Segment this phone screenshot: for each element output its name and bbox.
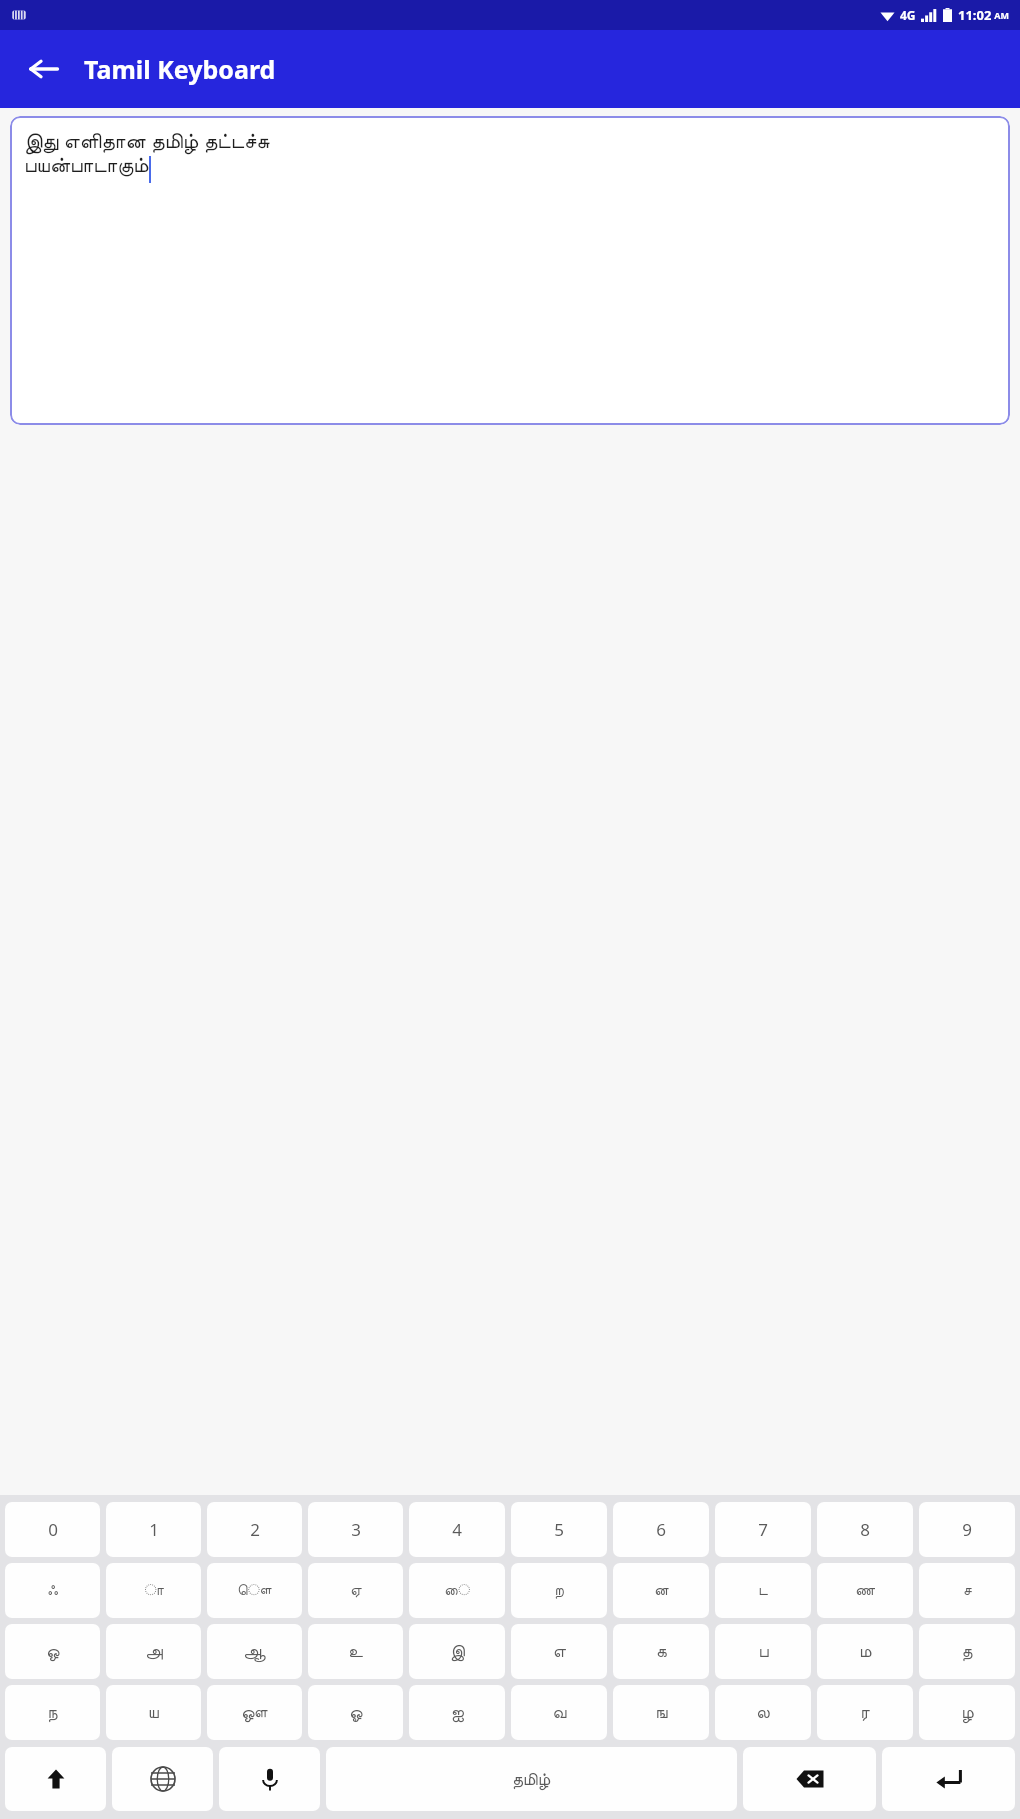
button[interactable]: ர [817,1685,913,1740]
button[interactable]: 2 [207,1502,302,1557]
button[interactable]: ஏ [308,1563,403,1618]
button[interactable]: தமிழ் [326,1747,737,1811]
staticText: 5 [554,1518,564,1541]
button[interactable]: எ [511,1624,607,1679]
button[interactable]: 0 [5,1502,100,1557]
staticText: 0 [48,1518,58,1541]
staticText: 6 [656,1518,666,1541]
staticText: AM [992,9,1010,21]
button[interactable]: இ [409,1624,505,1679]
button[interactable]: 8 [817,1502,913,1557]
button[interactable]: அ [106,1624,201,1679]
staticText: 1 [149,1518,159,1541]
button[interactable]: ற [511,1563,607,1618]
staticText: ல [756,1704,770,1721]
button[interactable]: Voice input [219,1747,320,1811]
staticText: ஔ [241,1704,268,1721]
staticText: Tamil Keyboard [84,52,276,86]
staticText: ன [654,1583,669,1598]
staticText: 7 [758,1518,768,1541]
staticText: ை [444,1583,470,1598]
staticText: இது எளிதான தமிழ் தட்டச்சு [24,126,270,155]
button[interactable]: 1 [106,1502,201,1557]
button[interactable]: ண [817,1563,913,1618]
staticText: அ [145,1643,163,1660]
button[interactable]: உ [308,1624,403,1679]
staticText: ப [758,1643,769,1660]
staticText: 9 [962,1518,972,1541]
button[interactable]: ட [715,1563,811,1618]
staticText: ஃ [47,1583,58,1598]
button[interactable]: ஃ [5,1563,100,1618]
staticText: ஓ [349,1704,363,1721]
button[interactable]: ம [817,1624,913,1679]
button[interactable]: ை [409,1563,505,1618]
staticText: ண [855,1583,875,1598]
button[interactable]: Change language [112,1747,213,1811]
button[interactable]: 4 [409,1502,505,1557]
staticText: பயன்பாடாகும் [24,155,149,176]
button[interactable]: த [919,1624,1015,1679]
button[interactable]: Back [18,43,70,95]
button[interactable]: ஒ [5,1624,100,1679]
button[interactable]: 5 [511,1502,607,1557]
staticText: 4 [452,1518,462,1541]
staticText: ா [144,1583,164,1598]
staticText: 8 [860,1518,870,1541]
staticText: ய [148,1704,159,1721]
button[interactable]: 7 [715,1502,811,1557]
staticText: த [961,1643,973,1660]
button[interactable]: ஐ [409,1685,505,1740]
staticText: தமிழ் [512,1771,551,1788]
staticText: ட [758,1583,768,1598]
staticText: ச [963,1583,972,1598]
staticText: 4G [900,7,916,23]
staticText: ங [655,1704,668,1721]
button[interactable]: ஆ [207,1624,302,1679]
button[interactable]: 6 [613,1502,709,1557]
staticText: ழ [961,1704,974,1721]
button[interactable]: 9 [919,1502,1015,1557]
button[interactable]: Backspace [743,1747,876,1811]
staticText: வ [552,1704,567,1721]
button[interactable]: ழ [919,1685,1015,1740]
staticText: ௌ [237,1583,272,1598]
staticText: ஐ [451,1704,464,1721]
button[interactable]: ங [613,1685,709,1740]
button[interactable]: Shift [5,1747,106,1811]
button[interactable]: இது எளிதான தமிழ் தட்டச்சு [10,116,1010,425]
button[interactable]: ஓ [308,1685,403,1740]
button[interactable]: 3 [308,1502,403,1557]
button[interactable]: ந [5,1685,100,1740]
staticText: ர [860,1704,870,1721]
button[interactable]: ப [715,1624,811,1679]
staticText: ஆ [243,1643,266,1660]
staticText: க [656,1643,667,1660]
staticText: இ [450,1643,465,1660]
staticText: ந [47,1704,58,1721]
button[interactable]: ஔ [207,1685,302,1740]
button[interactable]: Enter [882,1747,1015,1811]
button[interactable]: வ [511,1685,607,1740]
staticText: ற [554,1583,564,1598]
staticText: எ [553,1643,566,1660]
staticText: ஒ [46,1643,60,1660]
staticText: ம [859,1643,872,1660]
staticText: 3 [351,1518,361,1541]
button[interactable]: ௌ [207,1563,302,1618]
button[interactable]: ய [106,1685,201,1740]
button[interactable]: ா [106,1563,201,1618]
staticText: உ [348,1643,363,1660]
staticText: 2 [250,1518,260,1541]
staticText: 11:02 [958,6,992,24]
button[interactable]: க [613,1624,709,1679]
button[interactable]: ச [919,1563,1015,1618]
button[interactable]: ன [613,1563,709,1618]
staticText: ஏ [350,1583,362,1598]
button[interactable]: ல [715,1685,811,1740]
